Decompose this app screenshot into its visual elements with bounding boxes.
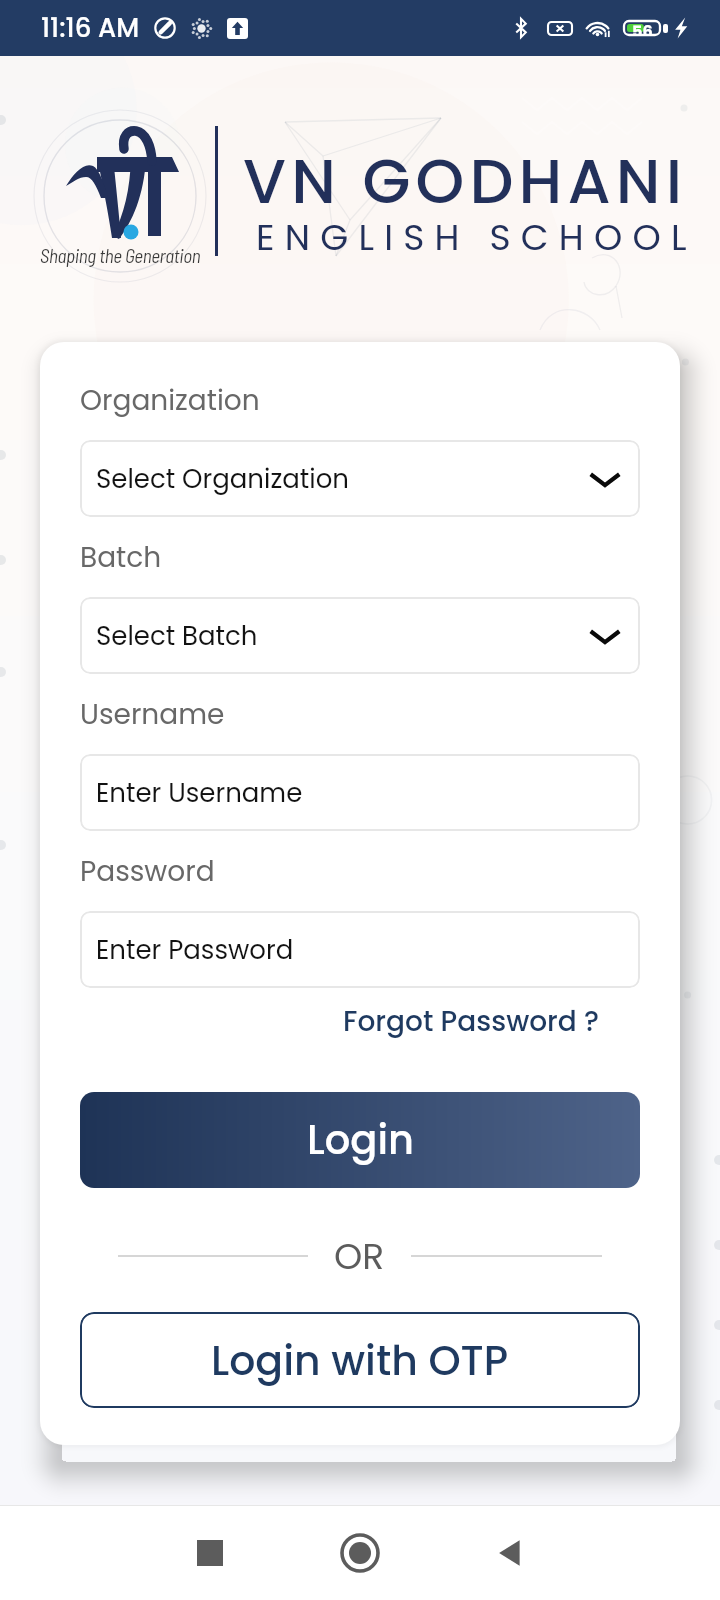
staticText: Select Batch <box>96 618 258 654</box>
staticText: Password <box>80 852 215 891</box>
button[interactable]: Select Batch <box>80 597 640 674</box>
staticText: ENGLISH SCHOOL <box>256 212 697 262</box>
staticText: 11:16 AM <box>41 10 140 46</box>
staticText: Organization <box>80 381 260 420</box>
button[interactable]: Login <box>80 1092 640 1188</box>
staticText: 56 <box>632 20 653 36</box>
button[interactable]: Home <box>322 1515 398 1591</box>
button[interactable]: Select Organization <box>80 440 640 517</box>
button[interactable]: Back <box>472 1515 548 1591</box>
button[interactable]: Enter Username <box>80 754 640 831</box>
button[interactable]: Forgot Password ? <box>343 1002 600 1041</box>
staticText: Forgot Password ? <box>343 1002 600 1041</box>
button[interactable]: Recent apps <box>172 1515 248 1591</box>
staticText: Enter Username <box>96 775 303 811</box>
staticText: Login with OTP <box>211 1332 509 1389</box>
staticText: Enter Password <box>96 932 294 968</box>
staticText: Select Organization <box>96 461 349 497</box>
staticText: VN GODHANI <box>243 138 688 225</box>
button[interactable]: Enter Password <box>80 911 640 988</box>
staticText: Shaping the Generation <box>40 244 201 267</box>
staticText: Login <box>307 1112 414 1168</box>
staticText: Batch <box>80 538 162 577</box>
staticText: OR <box>334 1231 385 1281</box>
staticText: Username <box>80 695 225 734</box>
button[interactable]: Login with OTP <box>80 1312 640 1408</box>
